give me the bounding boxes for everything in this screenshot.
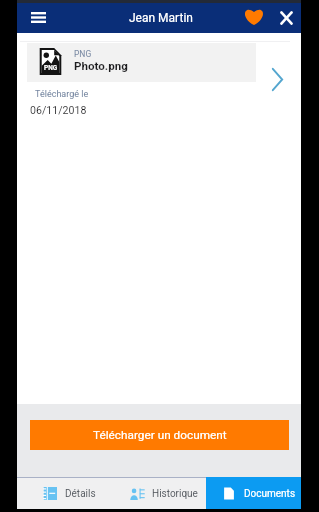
- button[interactable]: Historique: [111, 477, 206, 509]
- staticText: Historique: [152, 488, 198, 500]
- staticText: Jean Martin: [129, 11, 193, 25]
- button[interactable]: Détails: [17, 477, 111, 509]
- button[interactable]: Favorite: [241, 3, 267, 29]
- staticText: Téléchargé le: [35, 89, 89, 100]
- staticText: PNG: [74, 49, 92, 59]
- button[interactable]: Télécharger un document: [30, 420, 289, 450]
- staticText: PNG: [44, 64, 58, 72]
- button[interactable]: PNG: [17, 33, 301, 121]
- staticText: Télécharger un document: [93, 428, 227, 442]
- button[interactable]: Close: [273, 5, 299, 31]
- staticText: 06/11/2018: [30, 104, 87, 116]
- staticText: Photo.png: [74, 59, 128, 73]
- button[interactable]: Documents: [206, 477, 301, 509]
- button[interactable]: Menu: [22, 2, 54, 32]
- staticText: Détails: [65, 488, 96, 500]
- button[interactable]: Open document: [265, 63, 289, 95]
- staticText: Documents: [244, 488, 296, 500]
